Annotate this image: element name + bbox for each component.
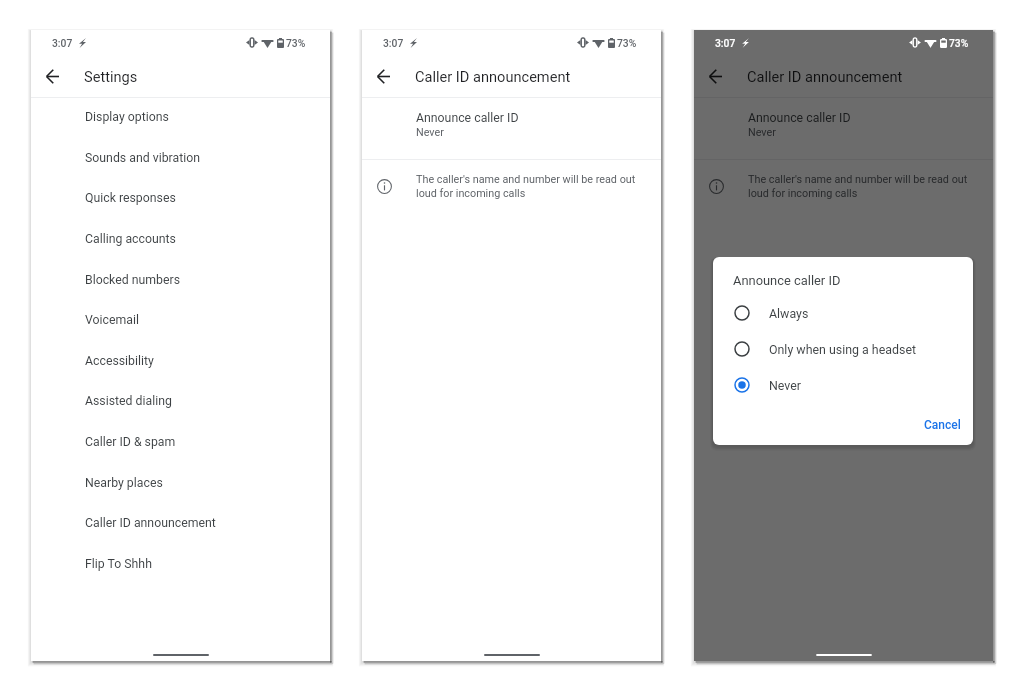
staticText: 73% [949,37,969,49]
button[interactable]: Display options [31,96,330,137]
staticText: Settings [84,68,138,85]
staticText: Announce caller ID [748,111,851,125]
staticText: Accessibility [85,354,154,368]
staticText: 3:07 [715,37,736,49]
button[interactable]: Caller ID announcement [31,502,330,543]
staticText: Caller ID & spam [85,435,176,449]
staticText: Caller ID announcement [85,516,216,530]
button[interactable]: Nearby places [31,462,330,503]
staticText: Blocked numbers [85,273,181,287]
button[interactable]: Navigate up [367,60,400,93]
staticText: Quick responses [85,191,176,205]
button[interactable]: Announce caller ID [362,98,661,159]
button[interactable]: Flip To Shhh [31,543,330,584]
staticText: Always [769,306,809,321]
staticText: 3:07 [52,37,73,49]
staticText: Never [769,378,802,393]
staticText: The caller's name and number will be rea… [748,173,973,200]
staticText: Caller ID announcement [415,68,571,85]
button[interactable]: Blocked numbers [31,259,330,300]
button[interactable]: Calling accounts [31,218,330,259]
staticText: Caller ID announcement [747,68,903,85]
staticText: Sounds and vibration [85,151,200,165]
button[interactable]: Caller ID & spam [31,421,330,462]
staticText: Cancel [924,418,961,432]
button[interactable]: Sounds and vibration [31,137,330,178]
button[interactable]: Never [713,367,973,403]
staticText: The caller's name and number will be rea… [416,173,641,200]
staticText: 3:07 [715,37,736,49]
button[interactable]: Voicemail [31,299,330,340]
staticText: 73% [286,37,306,49]
staticText: 73% [617,37,637,49]
staticText: Announce caller ID [416,111,519,125]
staticText: Never [416,126,444,139]
button[interactable]: Quick responses [31,177,330,218]
button[interactable]: Cancel [916,414,973,436]
staticText: Flip To Shhh [85,557,152,571]
staticText: 3:07 [383,37,404,49]
button[interactable]: Navigate up [36,60,69,93]
staticText: Never [748,126,776,139]
staticText: Calling accounts [85,232,176,246]
button[interactable]: Announce caller ID [694,98,993,159]
button[interactable]: Always [713,295,973,331]
staticText: Voicemail [85,313,139,327]
staticText: Assisted dialing [85,394,172,408]
staticText: Announce caller ID [733,273,841,288]
staticText: Nearby places [85,476,163,490]
button[interactable]: Accessibility [31,340,330,381]
button[interactable]: Assisted dialing [31,380,330,421]
staticText: Display options [85,110,169,124]
button[interactable]: Navigate up [699,60,732,93]
button[interactable]: Only when using a headset [713,331,973,367]
staticText: 73% [949,37,969,49]
staticText: Only when using a headset [769,342,917,357]
